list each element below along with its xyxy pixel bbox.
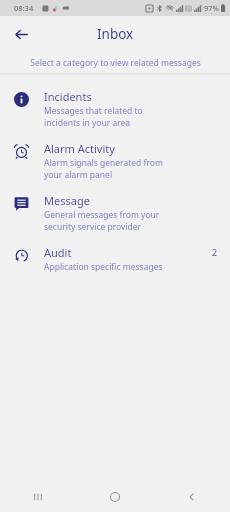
staticText: incidents in your area (44, 117, 131, 129)
button[interactable]: Incidents (0, 83, 230, 135)
staticText: Incidents (44, 89, 92, 104)
button[interactable]: Back (6, 19, 36, 49)
staticText: Inbox (97, 25, 134, 43)
button[interactable]: Message (0, 187, 230, 239)
staticText: Message (44, 193, 90, 208)
button[interactable]: Recents (0, 482, 76, 512)
staticText: your alarm panel (44, 169, 113, 181)
staticText: Audit (44, 245, 72, 260)
staticText: Application specific messages (44, 261, 163, 273)
button[interactable]: Home (76, 482, 153, 512)
staticText: Messages that related to (44, 105, 143, 117)
staticText: security service provider (44, 221, 142, 233)
staticText: Alarm Activity (44, 141, 115, 156)
staticText: 2 (212, 246, 218, 258)
staticText: 97% (204, 3, 219, 13)
staticText: Select a category to view related messag… (30, 57, 201, 69)
button[interactable]: Back (153, 482, 230, 512)
staticText: Alarm signals generated from (44, 157, 163, 169)
staticText: General messages from your (44, 209, 160, 221)
button[interactable]: Audit (0, 239, 230, 279)
button[interactable]: Alarm Activity (0, 135, 230, 187)
staticText: 08:34 (14, 3, 34, 13)
